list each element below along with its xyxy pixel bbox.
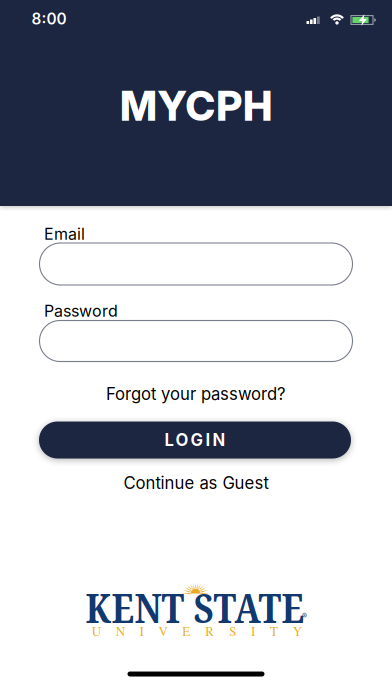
staticText: MYCPH: [120, 81, 272, 131]
button[interactable]: Forgot your password?: [106, 384, 286, 404]
staticText: G: [190, 430, 203, 450]
button[interactable]: Continue as Guest: [123, 473, 268, 493]
staticText: Continue as Guest: [123, 473, 268, 493]
staticText: U: [92, 622, 101, 640]
staticText: S: [229, 622, 236, 640]
button[interactable]: [39, 243, 352, 285]
staticText: Y: [293, 622, 302, 640]
staticText: Forgot your password?: [106, 384, 286, 404]
staticText: V: [158, 622, 167, 640]
button[interactable]: L: [39, 421, 351, 458]
staticText: Password: [44, 301, 118, 321]
staticText: N: [212, 430, 225, 450]
staticText: E: [182, 622, 190, 640]
staticText: KENT STATE: [85, 580, 304, 634]
staticText: I: [140, 622, 144, 640]
staticText: Email: [44, 224, 85, 244]
staticText: N: [116, 622, 125, 640]
staticText: ®: [302, 612, 307, 620]
staticText: I: [251, 622, 255, 640]
button[interactable]: [39, 320, 352, 361]
staticText: I: [205, 430, 210, 450]
staticText: L: [164, 430, 173, 450]
staticText: T: [270, 622, 278, 640]
staticText: O: [175, 430, 188, 450]
staticText: 8:00: [31, 10, 66, 28]
staticText: R: [205, 622, 214, 640]
